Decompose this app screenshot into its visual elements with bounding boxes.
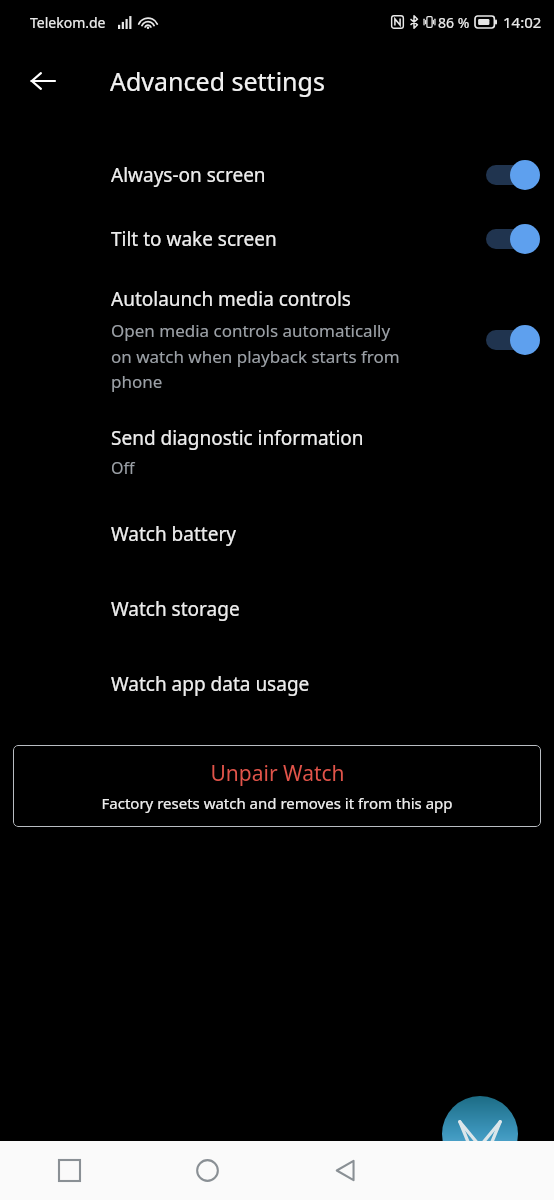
staticText: Telekom.de: [30, 13, 106, 32]
staticText: Always-on screen: [111, 162, 486, 188]
button[interactable]: Recents: [0, 1141, 138, 1200]
button[interactable]: Back: [276, 1141, 415, 1200]
staticText: Autolaunch media controls: [111, 286, 351, 312]
staticText: Tilt to wake screen: [111, 226, 486, 252]
staticText: Advanced settings: [110, 64, 325, 98]
staticText: Watch battery: [111, 521, 236, 547]
staticText: Open media controls automatically on wat…: [111, 319, 400, 393]
button[interactable]: Home: [138, 1141, 276, 1200]
button[interactable]: Send diagnostic information: [0, 425, 554, 479]
button[interactable]: Watch battery: [0, 521, 554, 547]
button[interactable]: Always-on screen: [0, 160, 554, 190]
button[interactable]: Open app: [442, 1096, 518, 1172]
staticText: Unpair Watch: [210, 759, 345, 788]
staticText: Send diagnostic information: [111, 425, 364, 451]
staticText: Off: [111, 457, 135, 479]
button[interactable]: Watch storage: [0, 596, 554, 622]
staticText: Watch storage: [111, 596, 240, 622]
button[interactable]: Unpair Watch: [13, 745, 541, 827]
button[interactable]: Tilt to wake screen: [0, 224, 554, 254]
button[interactable]: Watch app data usage: [0, 671, 554, 697]
button[interactable]: Back: [18, 56, 68, 106]
button[interactable]: Autolaunch media controls: [0, 286, 554, 393]
staticText: 14:02: [503, 12, 542, 32]
staticText: 86 %: [438, 13, 470, 32]
staticText: Watch app data usage: [111, 671, 310, 697]
staticText: Factory resets watch and removes it from…: [101, 793, 453, 813]
